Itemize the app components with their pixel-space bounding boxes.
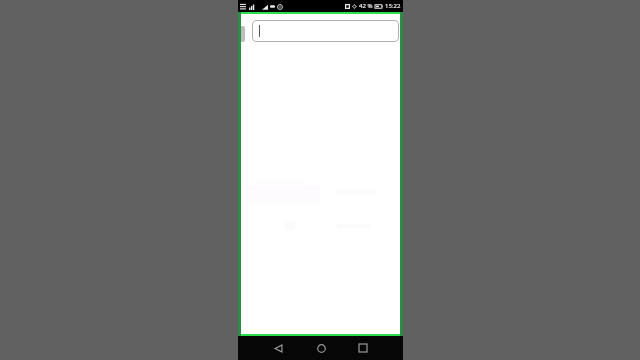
- staticText: 15:22: [385, 2, 401, 10]
- button[interactable]: Search text field: [252, 20, 399, 42]
- button[interactable]: Home: [311, 338, 331, 358]
- button[interactable]: Drawer handle: [241, 26, 245, 42]
- staticText: 42 %: [359, 2, 373, 10]
- button[interactable]: Back: [268, 338, 288, 358]
- button[interactable]: Recent apps: [353, 338, 373, 358]
